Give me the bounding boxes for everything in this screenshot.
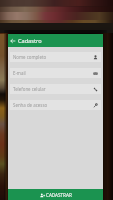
staticText: Cadastro (18, 37, 42, 45)
staticText: E-mail (13, 70, 26, 76)
staticText: Nome completo (13, 54, 47, 60)
staticText: Senha de acesso (13, 102, 48, 108)
staticText: CADASTRAR (46, 192, 72, 198)
button[interactable]: Back (8, 34, 18, 47)
button[interactable]: CADASTRAR (8, 189, 103, 200)
button[interactable]: Senha de acesso (10, 100, 101, 110)
button[interactable]: E-mail (10, 68, 101, 78)
button[interactable]: Telefone celular (10, 84, 101, 94)
button[interactable]: Nome completo (10, 52, 101, 62)
staticText: Telefone celular (13, 86, 46, 92)
